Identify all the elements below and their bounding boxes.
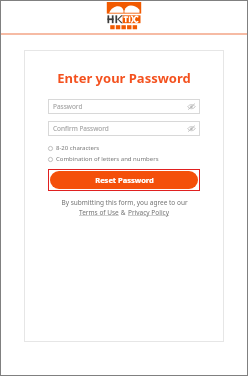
other: HKTDC logo [104,2,144,31]
staticText: Privacy Policy [128,208,170,217]
button[interactable]: Privacy Policy [128,208,170,217]
staticText: & [119,208,128,217]
staticText: Confirm Password [53,124,187,133]
staticText: Enter your Password [57,69,191,87]
staticText: By submitting this form, you agree to ou… [61,198,188,207]
button[interactable]: Show password [187,102,196,111]
button[interactable]: Reset Password [50,171,198,189]
button[interactable]: Password [48,99,200,114]
staticText: Password [53,102,187,111]
button[interactable]: Terms of Use [79,208,119,217]
staticText: Terms of Use [79,208,119,217]
button[interactable]: 8-20 characters [48,144,200,152]
button[interactable]: Show password [187,124,196,133]
button[interactable]: Confirm Password [48,121,200,136]
staticText: 8-20 characters [56,144,100,152]
button[interactable]: Combination of letters and numbers [48,155,200,163]
staticText: Reset Password [95,175,154,185]
staticText: Combination of letters and numbers [56,155,159,163]
